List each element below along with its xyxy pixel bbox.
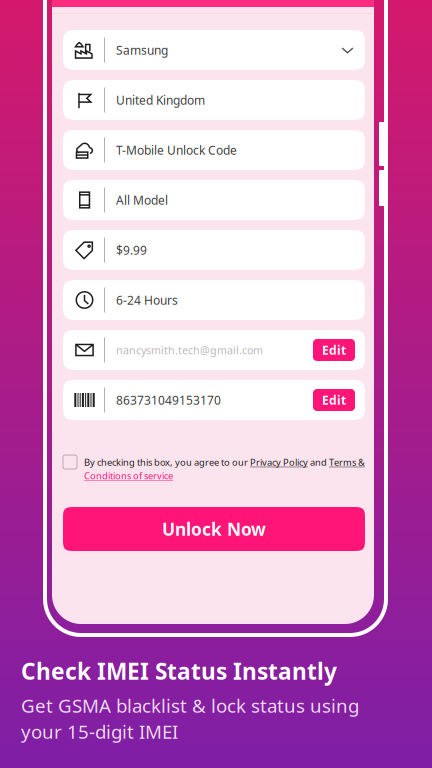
button[interactable]: 6-24 Hours (63, 280, 365, 320)
staticText: United Kingdom (116, 92, 205, 108)
button[interactable]: All Model (63, 180, 365, 220)
staticText: All Model (116, 192, 168, 208)
staticText: Samsung (116, 42, 168, 58)
staticText: Get GSMA blacklist & lock status using (21, 693, 359, 718)
staticText: Edit (322, 342, 346, 358)
staticText: $9.99 (116, 242, 147, 258)
staticText: Conditions of service (84, 469, 173, 482)
button[interactable] (63, 455, 77, 469)
button[interactable]: 863731049153170 (63, 380, 365, 420)
staticText: 6-24 Hours (116, 292, 178, 308)
button[interactable]: United Kingdom (63, 80, 365, 120)
staticText: nancysmith.tech@gmail.com (116, 343, 263, 357)
staticText: Edit (322, 392, 346, 408)
staticText: Unlock Now (162, 517, 266, 540)
button[interactable]: nancysmith.tech@gmail.com (63, 330, 365, 370)
staticText: T-Mobile Unlock Code (116, 142, 237, 158)
staticText: Check IMEI Status Instantly (21, 656, 337, 686)
button[interactable]: Unlock Now (63, 507, 365, 551)
staticText: 863731049153170 (116, 392, 221, 408)
staticText: By checking this box, you agree to our P… (84, 456, 365, 468)
button[interactable]: $9.99 (63, 230, 365, 270)
staticText: your 15-digit IMEI (21, 719, 178, 744)
button[interactable]: T-Mobile Unlock Code (63, 130, 365, 170)
button[interactable]: Samsung (63, 30, 365, 70)
